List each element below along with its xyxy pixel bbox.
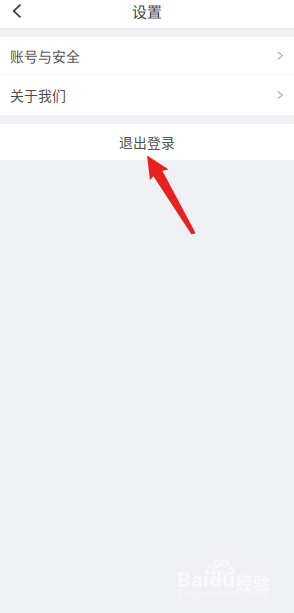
staticText: 账号与安全 <box>10 46 80 66</box>
staticText: Baidu <box>177 567 235 592</box>
staticText: 经验 <box>236 570 270 594</box>
staticText: 退出登录 <box>119 132 175 152</box>
staticText: 设置 <box>132 0 162 22</box>
button[interactable]: Back <box>0 0 34 22</box>
button[interactable]: 退出登录 <box>0 124 294 160</box>
button[interactable]: 账号与安全 <box>0 37 294 75</box>
staticText: 关于我们 <box>10 85 66 105</box>
button[interactable]: 关于我们 <box>0 75 294 115</box>
